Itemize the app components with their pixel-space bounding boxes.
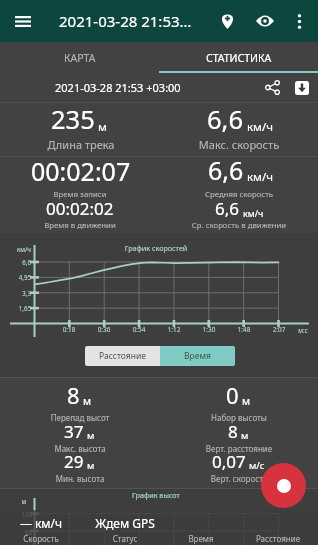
staticText: 133 bbox=[2, 510, 32, 518]
staticText: Верт. расстояние bbox=[139, 443, 318, 454]
staticText: км/ч bbox=[243, 207, 264, 219]
staticText: км/ч bbox=[4, 245, 44, 253]
staticText: 88 bbox=[2, 528, 32, 536]
staticText: км/ч bbox=[247, 119, 273, 135]
staticText: 37 bbox=[64, 420, 84, 443]
button[interactable]: Start recording bbox=[261, 463, 306, 508]
button[interactable]: КАРТА bbox=[0, 42, 159, 73]
staticText: 1:48 bbox=[229, 325, 259, 334]
staticText: м bbox=[87, 459, 95, 472]
staticText: м/с bbox=[249, 459, 265, 472]
staticText: Расстояние bbox=[99, 350, 146, 362]
staticText: 4,95 bbox=[1, 273, 31, 281]
staticText: Перепад высот bbox=[0, 412, 180, 423]
staticText: График скоростей bbox=[111, 243, 201, 253]
staticText: Длина трека bbox=[0, 137, 181, 152]
staticText: Время bbox=[184, 350, 211, 362]
staticText: м bbox=[242, 394, 251, 408]
staticText: м:с bbox=[288, 326, 318, 334]
staticText: Время записи bbox=[0, 189, 180, 200]
staticText: 0:36 bbox=[89, 325, 119, 334]
button[interactable]: Visibility bbox=[251, 7, 279, 35]
button[interactable]: Menu bbox=[8, 8, 38, 34]
staticText: 8 bbox=[228, 420, 238, 443]
staticText: м bbox=[87, 429, 95, 442]
staticText: Мин. высота bbox=[0, 473, 180, 484]
staticText: 1:30 bbox=[194, 325, 224, 334]
button[interactable]: СТАТИСТИКА bbox=[159, 42, 318, 73]
staticText: Время bbox=[151, 533, 251, 544]
button[interactable]: Расстояние bbox=[85, 346, 160, 366]
staticText: Скорость bbox=[0, 533, 91, 544]
staticText: Макс. высота bbox=[0, 443, 180, 454]
staticText: Верт. скорость bbox=[139, 473, 318, 484]
staticText: м bbox=[98, 119, 107, 135]
staticText: 6,6 bbox=[215, 197, 240, 220]
staticText: км/ч bbox=[247, 169, 273, 185]
staticText: 29 bbox=[64, 450, 84, 473]
staticText: 2021-03-28 21:53 +03:00 bbox=[55, 80, 258, 95]
staticText: Статус bbox=[75, 533, 175, 544]
staticText: 0:18 bbox=[54, 325, 84, 334]
staticText: 00:02:07 bbox=[31, 154, 131, 188]
staticText: 8 bbox=[67, 380, 80, 410]
staticText: 00:02:02 bbox=[46, 197, 114, 220]
staticText: 6,6 bbox=[207, 102, 244, 137]
staticText: Расстояние bbox=[228, 533, 318, 544]
button[interactable]: Время bbox=[160, 346, 235, 366]
staticText: 2021-03-28 21:53… bbox=[59, 11, 192, 31]
staticText: График высот bbox=[116, 490, 196, 500]
staticText: м bbox=[241, 429, 249, 442]
staticText: Средняя скорость bbox=[139, 189, 318, 200]
staticText: 1,65 bbox=[1, 304, 31, 312]
button[interactable]: Save bbox=[287, 73, 316, 102]
staticText: КАРТА bbox=[64, 51, 96, 65]
staticText: 0 bbox=[226, 380, 239, 410]
staticText: СТАТИСТИКА bbox=[206, 51, 272, 65]
staticText: Время в движении bbox=[0, 220, 180, 231]
staticText: 235 bbox=[51, 102, 95, 137]
staticText: Макс. скорость bbox=[139, 137, 318, 152]
staticText: — км/ч bbox=[0, 515, 91, 531]
staticText: Набор высоты bbox=[139, 412, 318, 423]
staticText: 3,3 bbox=[1, 289, 31, 297]
staticText: 6,6 bbox=[208, 153, 244, 187]
button[interactable]: Share bbox=[258, 73, 287, 102]
button[interactable]: Add marker bbox=[213, 7, 241, 35]
button[interactable]: More options bbox=[286, 7, 312, 35]
staticText: 0,07 bbox=[212, 450, 246, 473]
staticText: м bbox=[83, 394, 92, 408]
staticText: Ждем GPS bbox=[75, 515, 175, 531]
staticText: Ср. скорость в движении bbox=[139, 220, 318, 231]
staticText: 6,6 bbox=[1, 258, 31, 266]
staticText: м bbox=[9, 497, 39, 505]
staticText: 0:54 bbox=[124, 325, 154, 334]
staticText: 1:12 bbox=[159, 325, 189, 334]
staticText: 2:07 bbox=[264, 325, 294, 334]
